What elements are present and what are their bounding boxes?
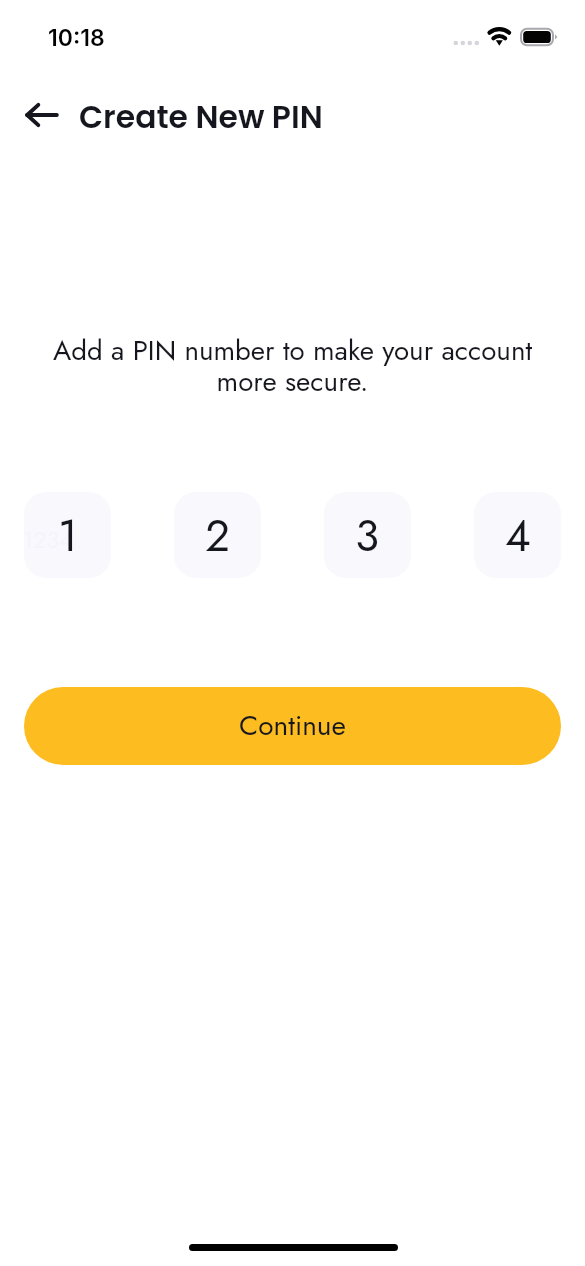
staticText: 10:18 — [48, 24, 105, 52]
staticText: 1234 — [24, 523, 73, 556]
button[interactable]: 2 — [174, 492, 261, 578]
staticText: Continue — [239, 705, 346, 745]
staticText: 3 — [355, 504, 380, 568]
staticText: Add a PIN number to make your account mo… — [45, 330, 540, 401]
button[interactable]: 3 — [324, 492, 411, 578]
button[interactable]: Back — [10, 92, 74, 137]
staticText: 4 — [505, 504, 531, 568]
button[interactable]: 4 — [474, 492, 561, 578]
staticText: Create New PIN — [79, 95, 323, 139]
staticText: 1 — [58, 504, 78, 568]
button[interactable]: 1234 — [24, 492, 111, 578]
button[interactable]: Continue — [24, 687, 561, 765]
staticText: 2 — [205, 504, 231, 568]
